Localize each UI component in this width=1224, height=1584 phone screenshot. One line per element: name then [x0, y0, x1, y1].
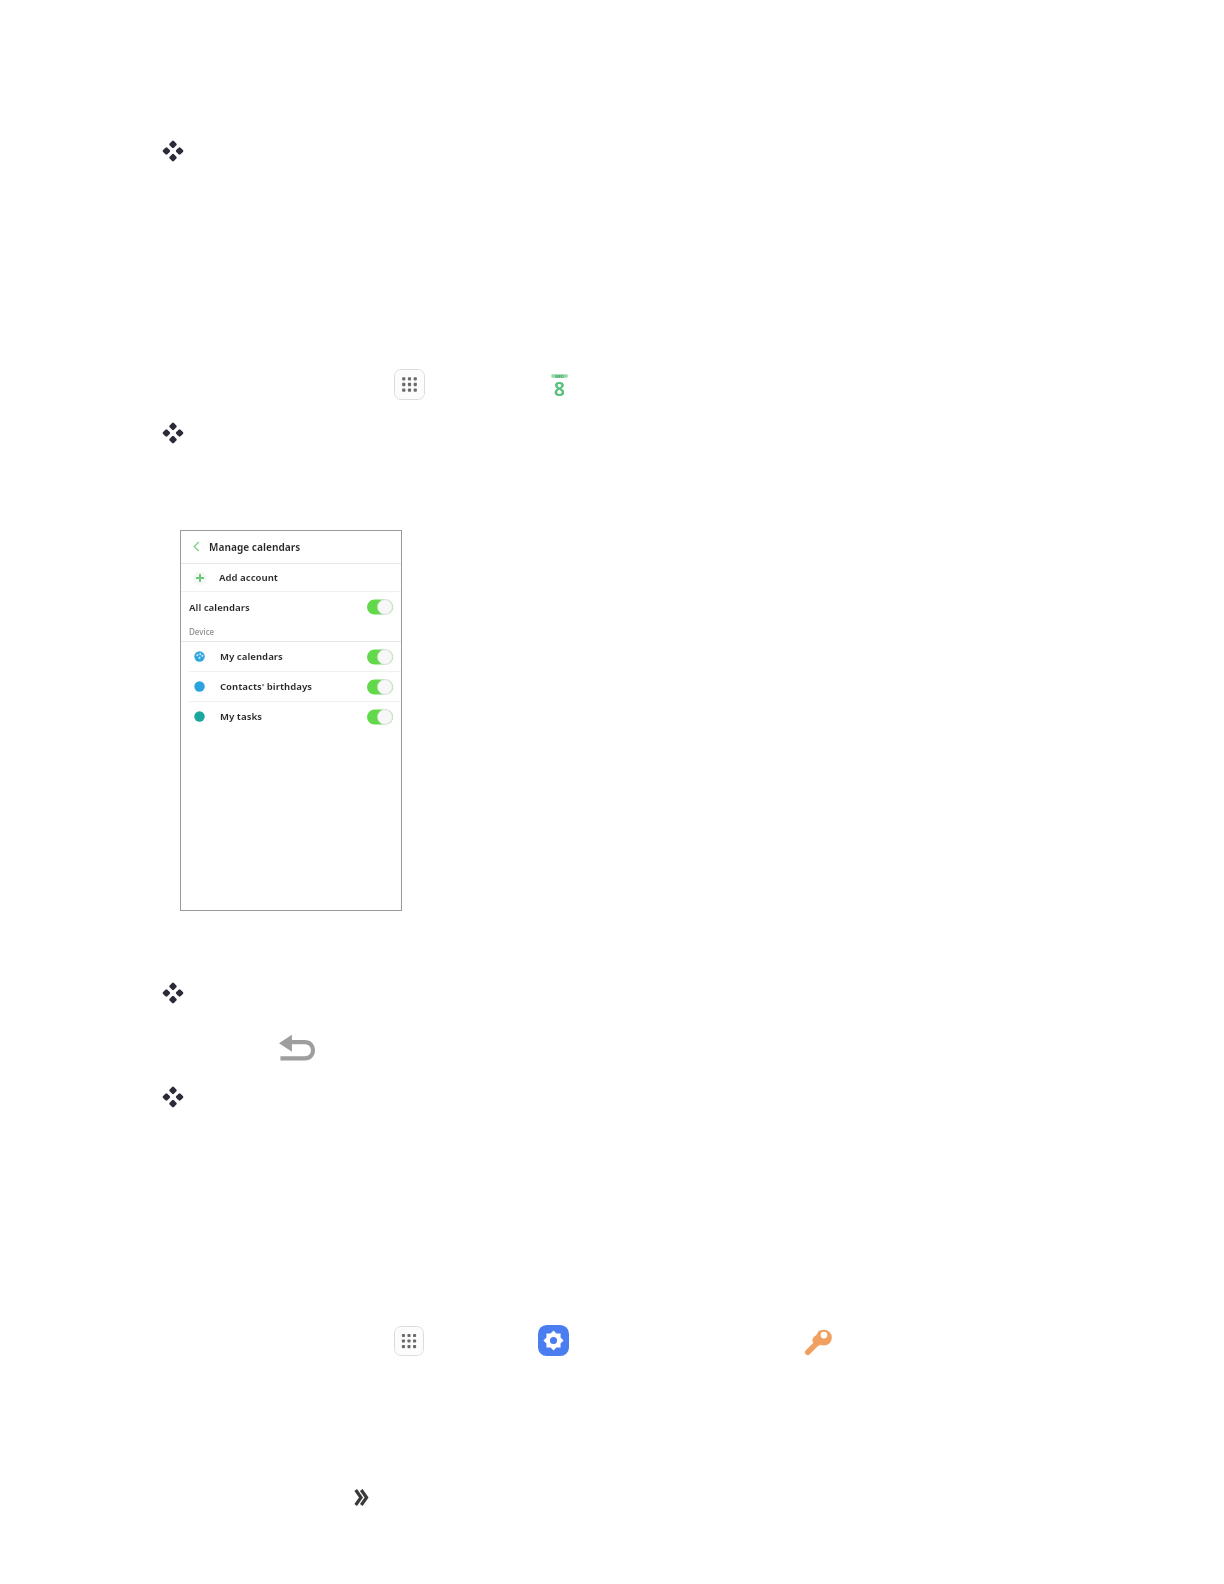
button[interactable]: My tasks — [180, 702, 402, 731]
button[interactable]: Next — [354, 1490, 368, 1505]
button[interactable]: Key — [803, 1325, 835, 1357]
button[interactable]: My calendars — [180, 642, 402, 671]
button[interactable] — [367, 709, 393, 725]
staticText: WED — [544, 374, 575, 379]
button[interactable]: All calendars — [180, 592, 402, 622]
staticText: 8 — [544, 376, 575, 407]
button[interactable]: Add account — [180, 564, 402, 591]
staticText: All calendars — [189, 601, 250, 614]
staticText: Device — [189, 626, 215, 637]
button[interactable]: Apps — [394, 369, 425, 400]
button[interactable] — [367, 679, 393, 695]
staticText: My tasks — [220, 710, 263, 723]
staticText: Contacts' birthdays — [220, 680, 313, 693]
button[interactable] — [367, 649, 393, 665]
button[interactable] — [367, 599, 393, 615]
button[interactable]: Settings — [538, 1325, 569, 1356]
button[interactable]: Contacts' birthdays — [180, 672, 402, 701]
staticText: Add account — [219, 571, 278, 584]
staticText: Manage calendars — [209, 540, 301, 554]
button[interactable]: Calendar — [544, 368, 575, 399]
button[interactable]: Apps — [394, 1326, 424, 1356]
button[interactable]: Back — [279, 1034, 315, 1061]
staticText: My calendars — [220, 650, 283, 663]
button[interactable]: Manage calendars — [180, 530, 402, 563]
